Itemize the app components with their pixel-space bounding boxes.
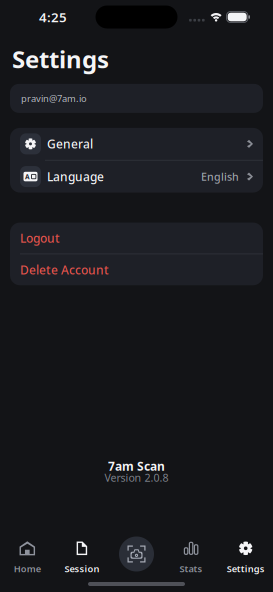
staticText: Version 2.0.8 bbox=[104, 470, 168, 485]
staticText: pravin@7am.io bbox=[21, 92, 87, 105]
button[interactable]: Delete Account bbox=[10, 254, 263, 285]
button[interactable]: Scan bbox=[119, 536, 154, 571]
staticText: Settings bbox=[227, 563, 265, 575]
button[interactable]: General bbox=[10, 128, 263, 160]
button[interactable]: Session bbox=[55, 541, 109, 575]
staticText: Logout bbox=[20, 230, 60, 246]
staticText: Home bbox=[14, 563, 41, 575]
staticText: 4:25 bbox=[39, 8, 67, 26]
button[interactable]: Settings bbox=[218, 541, 273, 575]
staticText: Session bbox=[64, 563, 99, 575]
button[interactable]: Home bbox=[0, 541, 55, 575]
staticText: Stats bbox=[180, 563, 203, 575]
staticText: A bbox=[25, 172, 30, 181]
staticText: General bbox=[47, 136, 93, 152]
staticText: Settings bbox=[12, 43, 109, 75]
staticText: 7am Scan bbox=[108, 458, 165, 474]
staticText: Delete Account bbox=[20, 262, 109, 278]
button[interactable]: A bbox=[10, 161, 263, 193]
staticText: English bbox=[201, 169, 239, 184]
staticText: Language bbox=[47, 169, 104, 184]
button[interactable]: Stats bbox=[164, 541, 218, 575]
button[interactable]: Logout bbox=[10, 223, 263, 254]
